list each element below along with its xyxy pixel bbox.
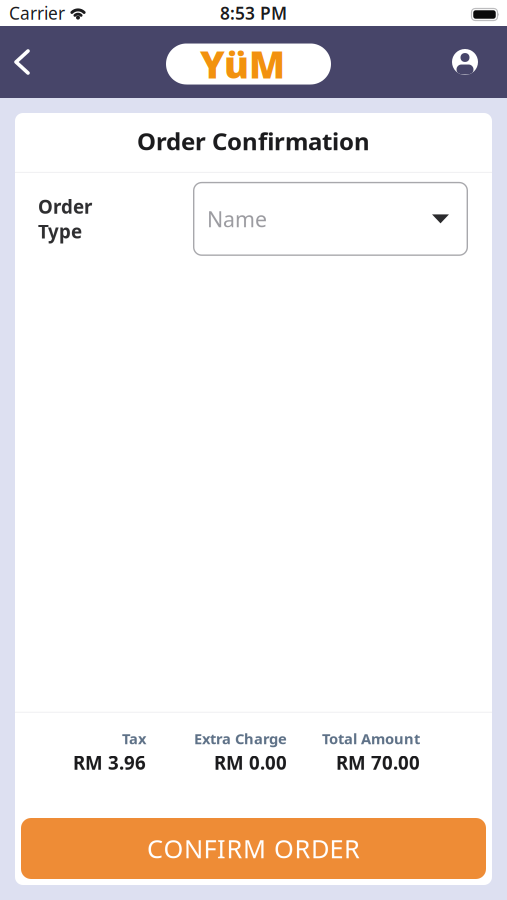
button[interactable]: CONFIRM ORDER	[21, 818, 486, 879]
staticText: RM 70.00	[336, 750, 420, 775]
staticText: Name	[207, 205, 267, 233]
button[interactable]: Order type: Name	[193, 182, 468, 256]
staticText: Extra Charge	[194, 729, 287, 748]
staticText: Total Amount	[322, 729, 420, 748]
staticText: Carrier	[9, 1, 65, 24]
staticText: Order Confirmation	[137, 125, 370, 157]
staticText: CONFIRM ORDER	[147, 832, 360, 865]
staticText: RM 3.96	[73, 750, 146, 775]
staticText: Order Type	[38, 194, 92, 244]
button[interactable]: Profile	[452, 37, 507, 87]
button[interactable]: Back	[0, 37, 30, 87]
staticText: 8:53 PM	[220, 1, 287, 24]
staticText: YüM	[200, 39, 285, 89]
staticText: RM 0.00	[214, 750, 287, 775]
staticText: Tax	[122, 729, 146, 748]
